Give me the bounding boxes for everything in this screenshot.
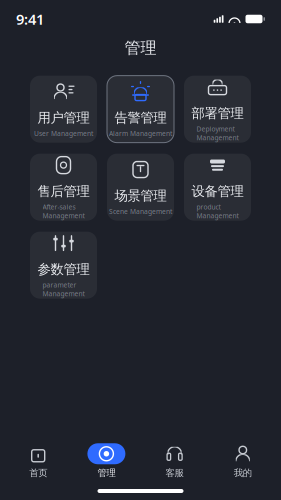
staticText: After-sales Management: [42, 202, 84, 220]
staticText: 首页: [29, 467, 47, 479]
staticText: 管理: [124, 38, 156, 58]
staticText: User Management: [34, 129, 93, 138]
staticText: Deployment Management: [196, 124, 238, 142]
button[interactable]: 参数管理: [30, 232, 97, 299]
staticText: 管理: [97, 467, 115, 479]
button[interactable]: 售后管理: [30, 154, 97, 221]
staticText: 用户管理: [37, 109, 89, 126]
staticText: 场景管理: [114, 187, 166, 204]
staticText: 售后管理: [37, 183, 89, 199]
staticText: 部署管理: [191, 105, 243, 121]
staticText: parameter Management: [42, 280, 84, 298]
staticText: 参数管理: [37, 261, 89, 277]
staticText: 客服: [166, 467, 184, 479]
staticText: Scene Management: [109, 207, 172, 216]
staticText: 告警管理: [114, 109, 166, 126]
staticText: product Management: [196, 202, 238, 220]
button[interactable]: 客服: [145, 442, 205, 480]
staticText: Alarm Management: [109, 129, 172, 138]
button[interactable]: 首页: [8, 442, 68, 480]
staticText: 设备管理: [191, 183, 243, 199]
staticText: 我的: [234, 467, 252, 479]
button[interactable]: 管理: [76, 442, 136, 480]
button[interactable]: 我的: [213, 442, 273, 480]
button[interactable]: 设备管理: [184, 154, 251, 221]
button[interactable]: 场景管理: [107, 154, 174, 221]
button[interactable]: 用户管理: [30, 76, 97, 143]
button[interactable]: 部署管理: [184, 76, 251, 143]
button[interactable]: 告警管理: [107, 76, 174, 143]
staticText: 9:41: [16, 9, 44, 29]
